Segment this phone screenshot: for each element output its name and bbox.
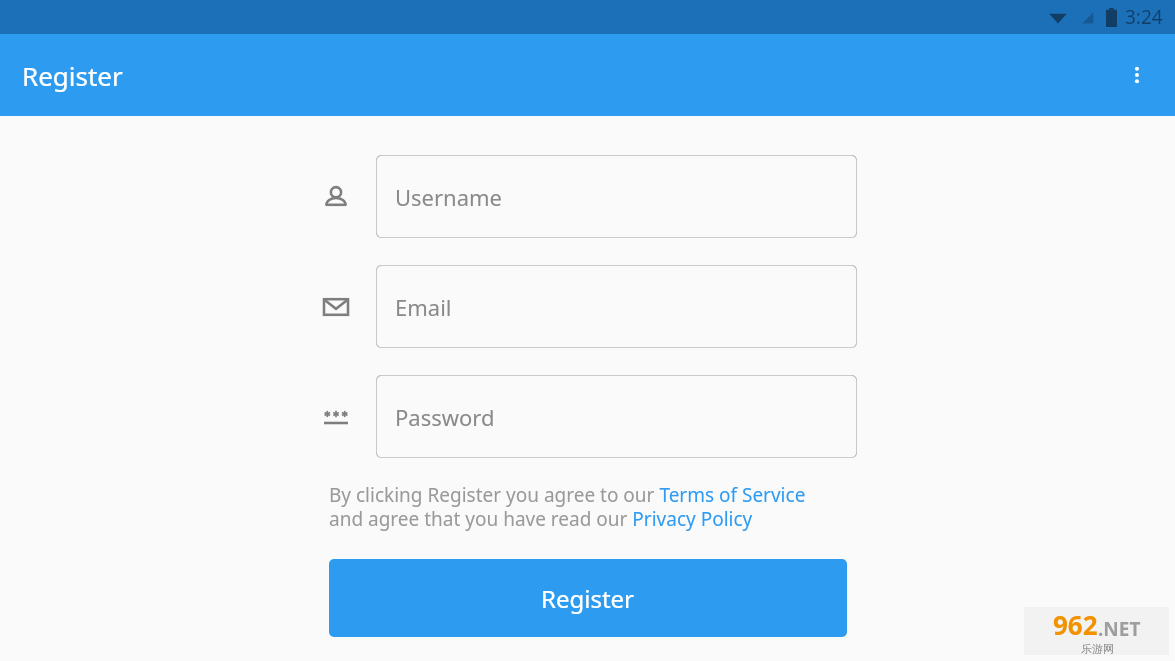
staticText: Email [395, 292, 452, 322]
staticText: 3:24 [1125, 4, 1163, 30]
staticText: Username [395, 182, 503, 212]
staticText: .NET [1098, 616, 1141, 642]
button[interactable]: By clicking Register you agree to our Te… [329, 482, 806, 531]
button[interactable]: Password [376, 375, 857, 458]
button[interactable]: More options [1113, 51, 1161, 99]
staticText: 乐游网 [1081, 642, 1114, 655]
staticText: Register [22, 58, 123, 93]
button[interactable]: Email [376, 265, 857, 348]
button[interactable]: Register [329, 559, 847, 637]
staticText: Register [541, 582, 635, 615]
staticText: 962 [1053, 607, 1098, 642]
button[interactable]: Username [376, 155, 857, 238]
staticText: Password [395, 402, 495, 432]
